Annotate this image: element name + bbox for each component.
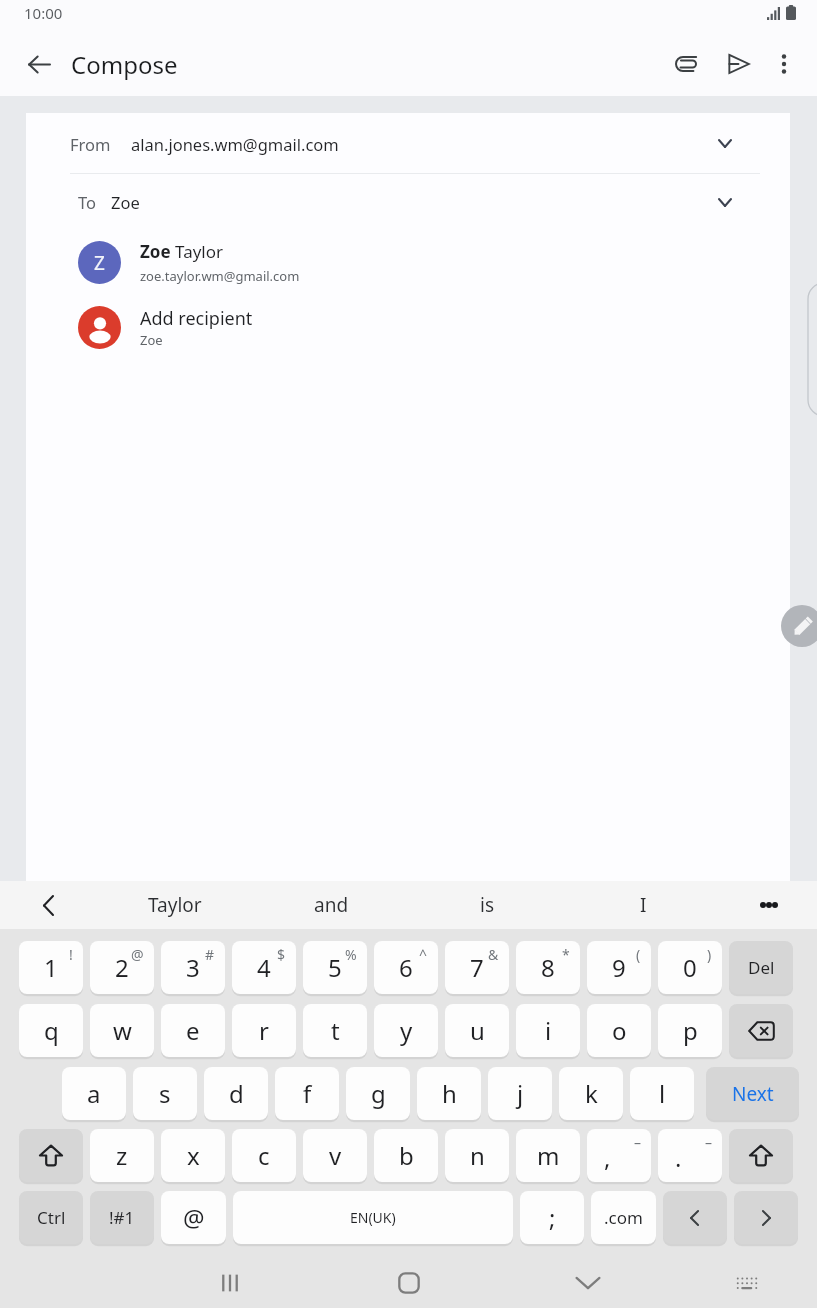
button[interactable]: a: [62, 1067, 126, 1120]
button[interactable]: Add recipient: [26, 295, 790, 360]
button[interactable]: c: [232, 1129, 296, 1182]
button[interactable]: More options: [758, 32, 810, 96]
staticText: o: [612, 1014, 627, 1047]
button[interactable]: ,: [587, 1129, 651, 1182]
staticText: Add recipient: [140, 306, 253, 331]
staticText: x: [187, 1139, 200, 1172]
button[interactable]: is: [409, 881, 565, 929]
button[interactable]: u: [445, 1004, 509, 1057]
staticText: 9: [612, 951, 626, 984]
button[interactable]: Hide keyboard: [544, 1254, 632, 1308]
button[interactable]: Compose: [781, 605, 817, 647]
staticText: Z: [94, 250, 105, 276]
staticText: b: [399, 1139, 414, 1172]
button[interactable]: s: [133, 1067, 197, 1120]
staticText: p: [683, 1014, 698, 1047]
staticText: d: [229, 1077, 244, 1110]
staticText: @: [183, 1201, 205, 1234]
staticText: &: [488, 945, 499, 964]
button[interactable]: .com: [591, 1191, 656, 1244]
button[interactable]: d: [204, 1067, 268, 1120]
button[interactable]: 4: [232, 941, 296, 994]
button[interactable]: x: [161, 1129, 225, 1182]
button[interactable]: b: [374, 1129, 438, 1182]
button[interactable]: f: [275, 1067, 339, 1120]
button[interactable]: g: [346, 1067, 410, 1120]
button[interactable]: v: [303, 1129, 367, 1182]
staticText: ;: [549, 1201, 556, 1234]
button[interactable]: More suggestions: [721, 881, 817, 929]
button[interactable]: EN(UK): [233, 1191, 513, 1244]
button[interactable]: i: [516, 1004, 580, 1057]
staticText: Ctrl: [37, 1206, 66, 1229]
staticText: Taylor: [148, 892, 202, 918]
button[interactable]: t: [303, 1004, 367, 1057]
staticText: Del: [748, 956, 775, 979]
staticText: *: [562, 945, 570, 964]
button[interactable]: and: [253, 881, 409, 929]
button[interactable]: backspace: [729, 1004, 793, 1057]
button[interactable]: Previous suggestions: [0, 881, 96, 929]
staticText: r: [259, 1014, 269, 1047]
button[interactable]: I: [565, 881, 721, 929]
button[interactable]: r: [232, 1004, 296, 1057]
button[interactable]: Home: [365, 1254, 453, 1308]
button[interactable]: 7: [445, 941, 509, 994]
button[interactable]: !#1: [90, 1191, 154, 1244]
staticText: y: [400, 1014, 413, 1047]
button[interactable]: q: [19, 1004, 83, 1057]
button[interactable]: z: [90, 1129, 154, 1182]
staticText: 4: [257, 951, 271, 984]
button[interactable]: 0: [658, 941, 722, 994]
button[interactable]: k: [559, 1067, 623, 1120]
button[interactable]: 2: [90, 941, 154, 994]
button[interactable]: w: [90, 1004, 154, 1057]
staticText: ,: [604, 1141, 611, 1174]
button[interactable]: 1: [19, 941, 83, 994]
button[interactable]: shift: [729, 1129, 793, 1182]
staticText: To: [78, 191, 97, 213]
button[interactable]: 8: [516, 941, 580, 994]
staticText: 8: [541, 951, 555, 984]
button[interactable]: Send: [712, 32, 764, 96]
button[interactable]: Next: [706, 1067, 799, 1120]
staticText: 3: [186, 951, 200, 984]
button[interactable]: shift: [19, 1129, 83, 1182]
button[interactable]: l: [630, 1067, 694, 1120]
button[interactable]: ;: [520, 1191, 584, 1244]
button[interactable]: Z: [26, 230, 790, 295]
staticText: Zoe Taylor: [140, 240, 224, 263]
button[interactable]: left: [663, 1191, 727, 1244]
button[interactable]: Del: [729, 941, 793, 994]
staticText: %: [345, 945, 357, 964]
staticText: alan.jones.wm@gmail.com: [131, 133, 339, 155]
button[interactable]: Change keyboard: [703, 1254, 791, 1308]
button[interactable]: 3: [161, 941, 225, 994]
staticText: zoe.taylor.wm@gmail.com: [140, 267, 300, 285]
staticText: w: [113, 1014, 132, 1047]
button[interactable]: 6: [374, 941, 438, 994]
staticText: z: [116, 1139, 128, 1172]
button[interactable]: Attach file: [660, 32, 712, 96]
button[interactable]: Taylor: [96, 881, 253, 929]
button[interactable]: e: [161, 1004, 225, 1057]
staticText: –: [705, 1133, 712, 1152]
button[interactable]: right: [734, 1191, 798, 1244]
button[interactable]: h: [417, 1067, 481, 1120]
button[interactable]: 5: [303, 941, 367, 994]
button[interactable]: m: [516, 1129, 580, 1182]
button[interactable]: Recent apps: [186, 1254, 274, 1308]
button[interactable]: @: [161, 1191, 226, 1244]
button[interactable]: j: [488, 1067, 552, 1120]
button[interactable]: o: [587, 1004, 651, 1057]
button[interactable]: Back: [0, 32, 78, 96]
staticText: e: [186, 1014, 200, 1047]
button[interactable]: 9: [587, 941, 651, 994]
staticText: .: [675, 1141, 682, 1174]
staticText: !: [69, 945, 73, 964]
button[interactable]: p: [658, 1004, 722, 1057]
button[interactable]: y: [374, 1004, 438, 1057]
button[interactable]: Ctrl: [19, 1191, 83, 1244]
button[interactable]: n: [445, 1129, 509, 1182]
button[interactable]: .: [658, 1129, 722, 1182]
